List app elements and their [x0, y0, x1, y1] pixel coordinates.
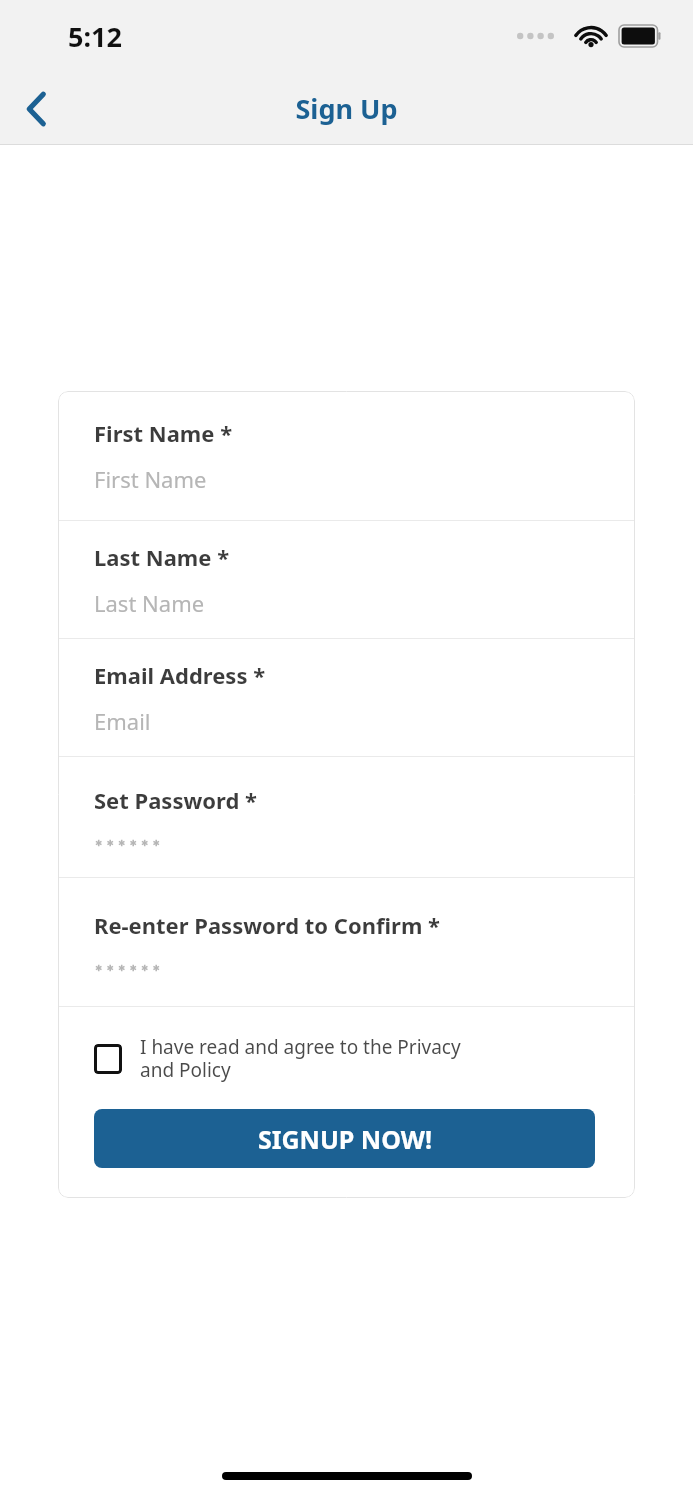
button[interactable]: Re-enter Password to Confirm *	[58, 878, 635, 1006]
button[interactable]: Last Name *	[58, 521, 635, 638]
staticText: Set Password *	[94, 785, 257, 815]
button[interactable]: SIGNUP NOW!	[94, 1109, 595, 1168]
staticText: Email	[94, 706, 151, 736]
button[interactable]: First Name *	[58, 391, 635, 520]
button[interactable]: Back	[0, 73, 72, 145]
button[interactable]: I have read and agree to the Privacy and…	[94, 1034, 595, 1083]
staticText: First Name	[94, 464, 207, 494]
staticText: Last Name	[94, 588, 205, 618]
staticText: Email Address *	[94, 660, 266, 690]
staticText: I have read and agree to the Privacy and…	[140, 1034, 490, 1083]
button[interactable]: Email Address *	[58, 639, 635, 756]
staticText: Last Name *	[94, 542, 230, 572]
staticText: First Name *	[94, 418, 233, 448]
staticText: Re-enter Password to Confirm *	[94, 910, 440, 940]
staticText: SIGNUP NOW!	[258, 1122, 432, 1156]
staticText: Sign Up	[295, 90, 398, 127]
button[interactable]: Set Password *	[58, 757, 635, 877]
staticText: 5:12	[68, 18, 122, 55]
